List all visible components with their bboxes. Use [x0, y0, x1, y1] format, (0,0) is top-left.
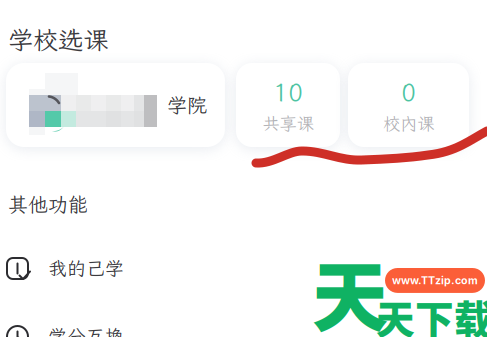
button[interactable]: 学院: [6, 63, 225, 147]
staticText: 天: [312, 237, 388, 337]
staticText: 学校选课: [8, 23, 108, 56]
button[interactable]: 我的己学: [0, 246, 487, 290]
staticText: 学分互换: [48, 324, 124, 337]
staticText: 10: [273, 75, 303, 109]
button[interactable]: 学分互换: [0, 314, 487, 337]
staticText: 校内课: [383, 112, 434, 135]
button[interactable]: 10: [236, 63, 340, 147]
staticText: 学院: [167, 92, 207, 118]
staticText: 共享课: [262, 112, 313, 135]
staticText: 其他功能: [8, 191, 88, 217]
button[interactable]: 0: [348, 63, 469, 147]
staticText: 天下载: [376, 289, 487, 337]
staticText: 我的己学: [48, 256, 124, 280]
staticText: 0: [401, 75, 416, 109]
staticText: www.TTzip.com: [392, 274, 478, 287]
